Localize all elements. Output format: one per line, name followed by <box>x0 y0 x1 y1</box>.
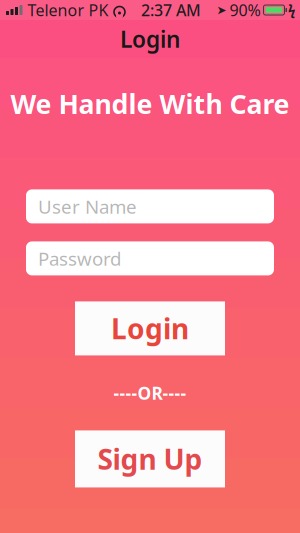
staticText: 2:37 AM <box>141 0 201 21</box>
staticText: ϟ <box>288 1 295 19</box>
staticText: User Name <box>38 194 137 219</box>
staticText: Telenor PK <box>27 0 108 21</box>
staticText: ----OR---- <box>113 381 186 404</box>
staticText: ➤ <box>216 3 226 17</box>
staticText: 90% <box>229 0 260 21</box>
button[interactable]: User Name <box>26 189 274 223</box>
staticText: We Handle With Care <box>10 86 289 121</box>
button[interactable]: Login <box>75 301 225 355</box>
staticText: Login <box>120 24 180 54</box>
staticText: Password <box>38 246 121 271</box>
staticText: Login <box>111 310 189 347</box>
button[interactable]: Sign Up <box>75 430 225 487</box>
staticText: Sign Up <box>97 440 202 477</box>
button[interactable]: Password <box>26 241 274 275</box>
